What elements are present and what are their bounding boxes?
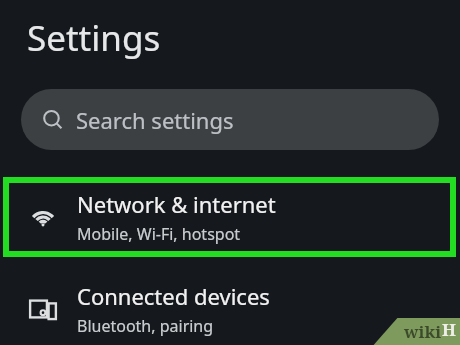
- staticText: Settings: [27, 14, 161, 62]
- other: Network and internet: [9, 183, 77, 251]
- staticText: Bluetooth, pairing: [77, 315, 214, 337]
- staticText: Connected devices: [77, 281, 270, 311]
- button[interactable]: Network and internet: [9, 183, 451, 251]
- other: Connected devices: [9, 275, 77, 343]
- staticText: Search settings: [76, 105, 234, 135]
- button[interactable]: Search: [21, 89, 439, 150]
- button[interactable]: Connected devices: [9, 275, 451, 343]
- other: Search: [42, 109, 64, 131]
- staticText: Mobile, Wi-Fi, hotspot: [77, 223, 241, 245]
- staticText: How: [442, 318, 460, 345]
- staticText: wiki: [404, 320, 442, 343]
- staticText: Network & internet: [77, 189, 276, 219]
